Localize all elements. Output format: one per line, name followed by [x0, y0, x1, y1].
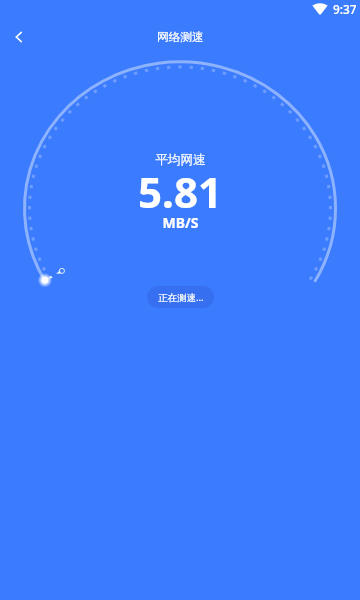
staticText: 网络测速 [157, 30, 204, 45]
staticText: 正在测速... [158, 291, 204, 304]
staticText: 9:37 [333, 1, 357, 17]
button[interactable]: 正在测速... [147, 286, 214, 308]
staticText: MB/S [162, 213, 199, 232]
staticText: 平均网速 [155, 152, 206, 168]
staticText: 5.81 [138, 163, 222, 220]
button[interactable]: Back [0, 19, 40, 55]
